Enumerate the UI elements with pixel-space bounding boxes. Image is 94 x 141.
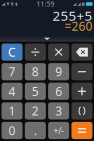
button[interactable]: Divide [25,43,46,61]
staticText: 4 [8,83,15,99]
staticText: 2 [32,103,39,119]
staticText: 7 [8,64,15,80]
button[interactable]: C [1,43,22,61]
staticText: 6 [55,83,62,99]
button[interactable]: Equals [71,122,92,139]
button[interactable]: 3 [48,102,69,119]
button[interactable]: Backspace [71,43,92,61]
button[interactable]: +/- [48,122,69,139]
button[interactable]: Plus [71,83,92,100]
staticText: 11:59 [37,0,55,8]
button[interactable]: Parentheses [71,102,92,119]
button[interactable]: Minus [71,63,92,80]
staticText: 5 [32,83,39,99]
button[interactable]: 4 [1,83,22,100]
staticText: 0 [8,122,15,138]
staticText: +/- [53,124,64,137]
button[interactable]: Show history [41,37,53,41]
staticText: =260 [64,18,92,34]
staticText: . [34,122,37,138]
button[interactable]: 9 [48,63,69,80]
staticText: C [8,44,16,60]
staticText: 1 [8,103,15,119]
button[interactable]: 8 [25,63,46,80]
button[interactable]: 0 [1,122,22,139]
button[interactable]: 2 [25,102,46,119]
button[interactable]: Multiply [48,43,69,61]
staticText: 255+5 [52,7,92,24]
staticText: 3 [55,103,62,119]
button[interactable]: 7 [1,63,22,80]
button[interactable]: . [25,122,46,139]
button[interactable]: 1 [1,102,22,119]
staticText: 8 [32,64,39,80]
staticText: 9 [55,64,62,80]
button[interactable]: 6 [48,83,69,100]
button[interactable]: 5 [25,83,46,100]
